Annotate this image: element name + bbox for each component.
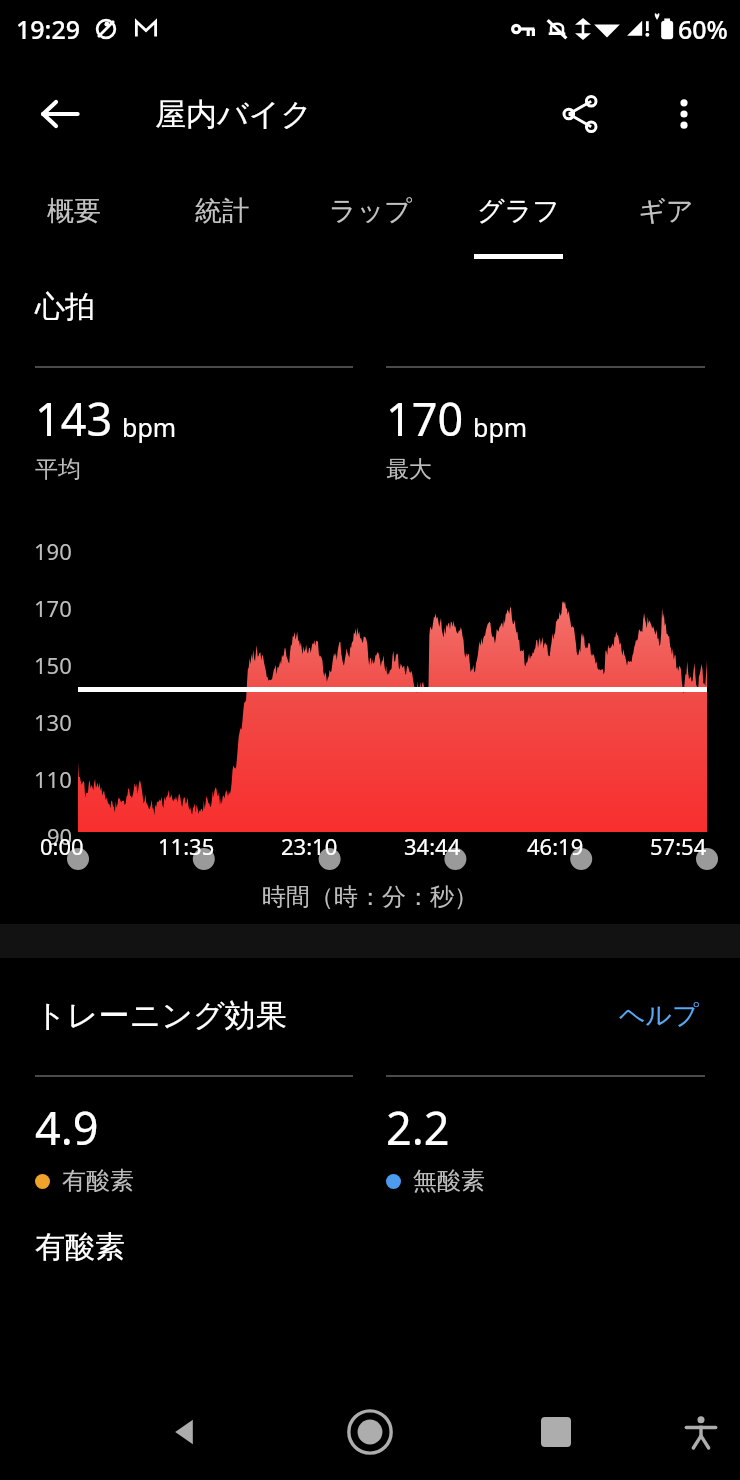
button[interactable]: 概要 bbox=[0, 170, 148, 280]
staticText: ラップ bbox=[329, 194, 412, 228]
staticText: 57:54 bbox=[650, 831, 707, 861]
button[interactable]: ラップ bbox=[296, 170, 444, 280]
staticText: グラフ bbox=[477, 194, 560, 228]
staticText: 有酸素 bbox=[62, 1166, 134, 1196]
staticText: ヘルプ bbox=[619, 999, 699, 1032]
staticText: 平均 bbox=[35, 455, 81, 484]
button[interactable]: その他のオプション bbox=[648, 78, 720, 150]
staticText: 屋内バイク bbox=[155, 95, 313, 134]
staticText: 無酸素 bbox=[413, 1166, 485, 1196]
button[interactable]: 統計 bbox=[148, 170, 296, 280]
button[interactable]: 共有 bbox=[544, 78, 616, 150]
staticText: トレーニング効果 bbox=[35, 996, 287, 1035]
staticText: 心拍 bbox=[35, 288, 95, 326]
staticText: 46:19 bbox=[527, 831, 584, 861]
staticText: bpm bbox=[473, 410, 528, 444]
staticText: 23:10 bbox=[281, 831, 338, 861]
staticText: 170 bbox=[386, 388, 464, 449]
staticText: 130 bbox=[34, 707, 72, 737]
staticText: 90 bbox=[47, 821, 73, 851]
staticText: bpm bbox=[122, 410, 177, 444]
staticText: 0:00 bbox=[40, 831, 84, 861]
staticText: 19:29 bbox=[16, 12, 81, 46]
button[interactable]: ユーザー補助 bbox=[670, 1401, 732, 1463]
staticText: 時間（時：分：秒） bbox=[0, 882, 740, 912]
staticText: 150 bbox=[34, 650, 72, 680]
staticText: 190 bbox=[34, 536, 72, 566]
staticText: 11:35 bbox=[158, 831, 215, 861]
staticText: 110 bbox=[34, 764, 72, 794]
button[interactable]: グラフ bbox=[444, 170, 592, 280]
staticText: 34:44 bbox=[404, 831, 461, 861]
button[interactable]: ギア bbox=[592, 170, 740, 280]
staticText: 170 bbox=[34, 593, 72, 623]
button[interactable]: 最近のアプリ bbox=[520, 1396, 592, 1468]
button[interactable]: 戻る bbox=[24, 78, 96, 150]
staticText: 有酸素 bbox=[35, 1228, 125, 1266]
staticText: ギア bbox=[638, 194, 694, 228]
staticText: 2.2 bbox=[386, 1097, 450, 1158]
staticText: 統計 bbox=[195, 194, 249, 228]
staticText: 4.9 bbox=[35, 1097, 99, 1158]
staticText: 最大 bbox=[386, 455, 432, 484]
staticText: 60% bbox=[678, 12, 728, 46]
staticText: 143 bbox=[35, 388, 113, 449]
button[interactable]: ホーム bbox=[330, 1392, 410, 1472]
button[interactable]: ヘルプ bbox=[613, 994, 705, 1037]
staticText: 概要 bbox=[47, 194, 101, 228]
button[interactable]: 戻る bbox=[148, 1396, 220, 1468]
